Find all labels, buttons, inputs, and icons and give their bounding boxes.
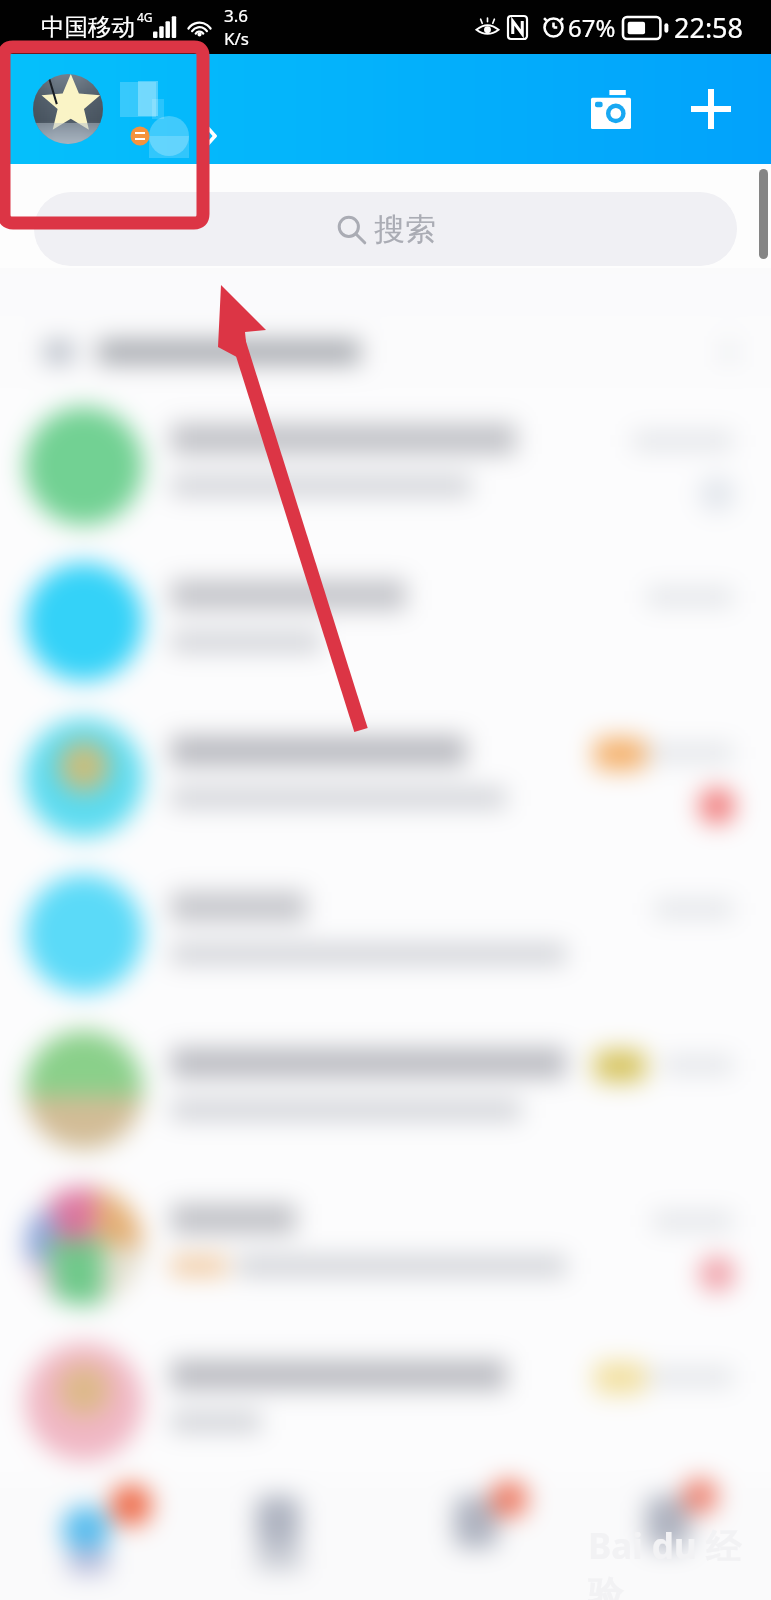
staticText: K/s — [224, 27, 249, 50]
button[interactable] — [0, 388, 771, 544]
button[interactable] — [0, 856, 771, 1012]
staticText: 搜索 — [374, 210, 436, 249]
button[interactable] — [0, 1324, 771, 1480]
staticText: 22:58 — [674, 9, 744, 46]
staticText: Bai du 经验 — [588, 1522, 771, 1600]
staticText: 3.6 — [224, 4, 249, 27]
staticText: 4G — [137, 9, 153, 25]
button[interactable] — [0, 1012, 771, 1168]
button[interactable] — [33, 54, 103, 164]
staticText: 中国移动 — [41, 12, 135, 42]
button[interactable]: Add — [671, 54, 751, 164]
button[interactable]: Camera — [571, 54, 651, 164]
button[interactable] — [0, 544, 771, 700]
button[interactable] — [0, 700, 771, 856]
staticText: 67% — [568, 11, 616, 44]
button[interactable] — [0, 1168, 771, 1324]
button[interactable]: 搜索 — [34, 192, 737, 266]
